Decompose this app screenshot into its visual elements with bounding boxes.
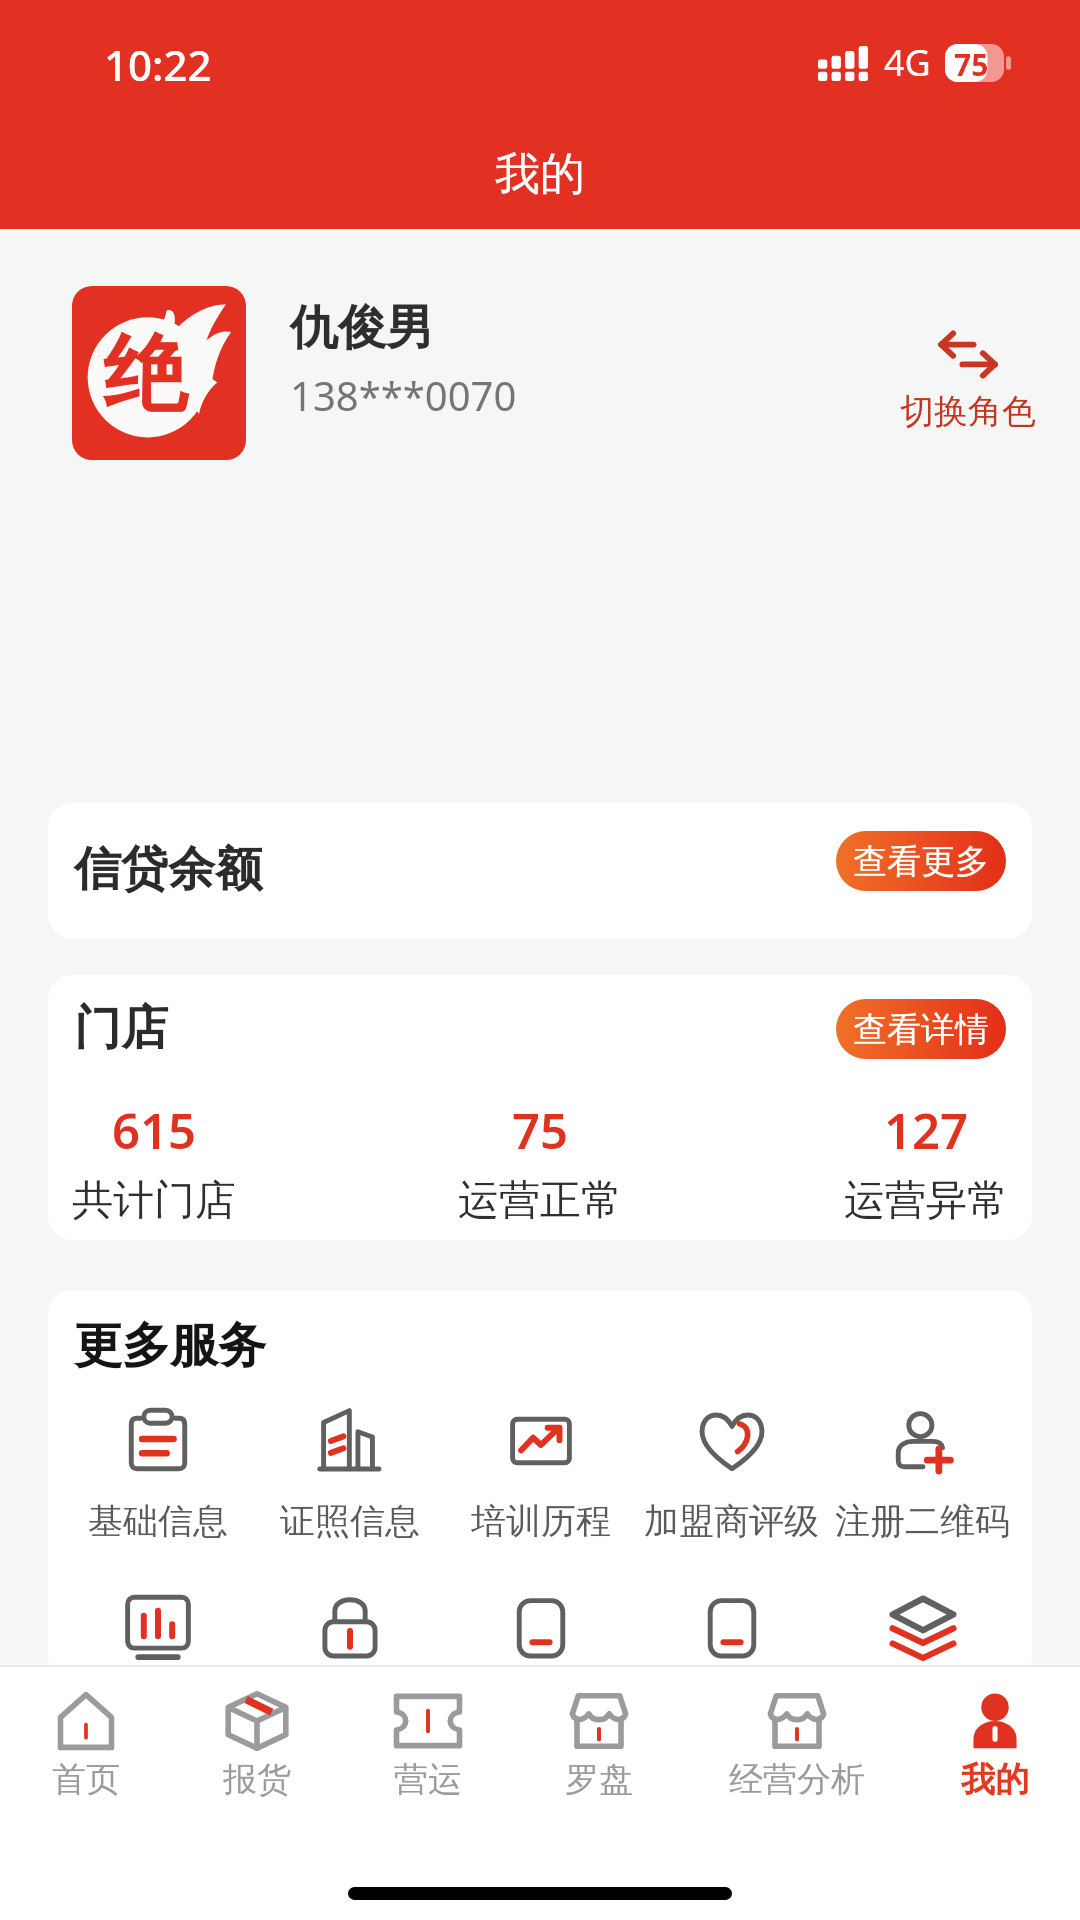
staticText: 615 [112, 1097, 197, 1164]
staticText: 经营分析 [729, 1758, 865, 1797]
button[interactable]: 615 [72, 1097, 236, 1227]
button[interactable]: 127 [844, 1097, 1008, 1227]
button[interactable]: 培训历程 [445, 1408, 636, 1543]
staticText: 门店 [74, 999, 168, 1058]
button[interactable]: 罗盘 [513, 1665, 684, 1797]
staticText: 基础信息 [88, 1499, 228, 1543]
other [890, 1594, 956, 1660]
staticText: 证照信息 [280, 1499, 420, 1543]
button[interactable]: 信贷余额 [48, 803, 1032, 939]
other [317, 1594, 383, 1660]
button[interactable]: 营运 [342, 1665, 513, 1797]
other [508, 1594, 574, 1660]
button[interactable]: 切换角色 [880, 333, 1056, 433]
button[interactable]: 查看详情 [836, 999, 1006, 1059]
button[interactable]: 首页 [0, 1665, 171, 1797]
button[interactable] [62, 1594, 254, 1660]
staticText: 75 [954, 44, 989, 82]
other [699, 1594, 765, 1660]
staticText: 75 [512, 1097, 569, 1164]
other: 注册二维码 [890, 1408, 956, 1474]
button[interactable]: 75 [458, 1097, 622, 1227]
other: 加盟商评级 [699, 1408, 765, 1474]
staticText: 共计门店 [72, 1175, 236, 1227]
staticText: 4G [884, 38, 931, 87]
staticText: 10:22 [104, 36, 212, 93]
button[interactable] [254, 1594, 445, 1660]
staticText: 报货 [223, 1758, 291, 1797]
other: 切换角色 [940, 333, 996, 376]
other: 培训历程 [508, 1408, 574, 1474]
staticText: 更多服务 [74, 1316, 266, 1376]
staticText: 绝 [103, 322, 187, 428]
staticText: 加盟商评级 [644, 1499, 819, 1543]
button[interactable]: 加盟商评级 [636, 1408, 827, 1543]
staticText: 切换角色 [900, 390, 1036, 433]
button[interactable]: 经营分析 [684, 1665, 909, 1797]
button[interactable]: 头像 [72, 286, 246, 460]
staticText: 127 [884, 1097, 969, 1164]
button[interactable]: 报货 [171, 1665, 342, 1797]
button[interactable]: 基础信息 [62, 1408, 254, 1543]
button[interactable] [445, 1594, 636, 1660]
staticText: 查看更多 [853, 840, 989, 883]
staticText: 营运 [394, 1758, 462, 1797]
other [125, 1594, 191, 1660]
staticText: 我的 [495, 146, 585, 203]
staticText: 培训历程 [471, 1499, 611, 1543]
button[interactable]: 查看更多 [836, 831, 1006, 891]
staticText: 运营异常 [844, 1175, 1008, 1227]
staticText: 查看详情 [853, 1008, 989, 1051]
other: 证照信息 [317, 1408, 383, 1474]
staticText: 138***0070 [290, 368, 517, 422]
button[interactable] [636, 1594, 827, 1660]
button[interactable] [827, 1594, 1018, 1660]
button[interactable]: 证照信息 [254, 1408, 445, 1543]
other: 基础信息 [125, 1408, 191, 1474]
staticText: 罗盘 [565, 1758, 633, 1797]
staticText: 首页 [52, 1758, 120, 1797]
staticText: 信贷余额 [74, 840, 262, 899]
staticText: 我的 [961, 1758, 1029, 1797]
staticText: 仇俊男 [290, 298, 434, 358]
staticText: 运营正常 [458, 1175, 622, 1227]
staticText: 注册二维码 [835, 1499, 1010, 1543]
button[interactable]: 我的 [909, 1665, 1080, 1797]
button[interactable]: 注册二维码 [827, 1408, 1018, 1543]
